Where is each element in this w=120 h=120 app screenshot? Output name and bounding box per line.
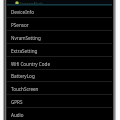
button[interactable]: GPRS (0, 95, 120, 108)
staticText: GPRS (11, 99, 23, 105)
staticText: DeviceInfo (11, 9, 34, 15)
button[interactable]: NvramSetting (0, 31, 120, 44)
button[interactable]: DeviceInfo (0, 5, 120, 18)
button[interactable]: PSensor (0, 18, 120, 31)
button[interactable]: BatteryLog (0, 69, 120, 82)
staticText: ExtraSetting (11, 48, 38, 54)
staticText: BatteryLog (11, 73, 35, 79)
staticText: TouchScreen (11, 86, 39, 92)
staticText: PSensor (11, 22, 29, 28)
button[interactable]: Audio (0, 108, 120, 120)
staticText: Wifi Country Code (11, 61, 50, 67)
button[interactable]: Wifi Country Code (0, 57, 120, 70)
staticText: EngineerMode (20, 1, 43, 5)
staticText: NvramSetting (11, 35, 41, 41)
button[interactable]: TouchScreen (0, 82, 120, 95)
button[interactable]: ExtraSetting (0, 44, 120, 57)
staticText: Audio (11, 112, 24, 118)
